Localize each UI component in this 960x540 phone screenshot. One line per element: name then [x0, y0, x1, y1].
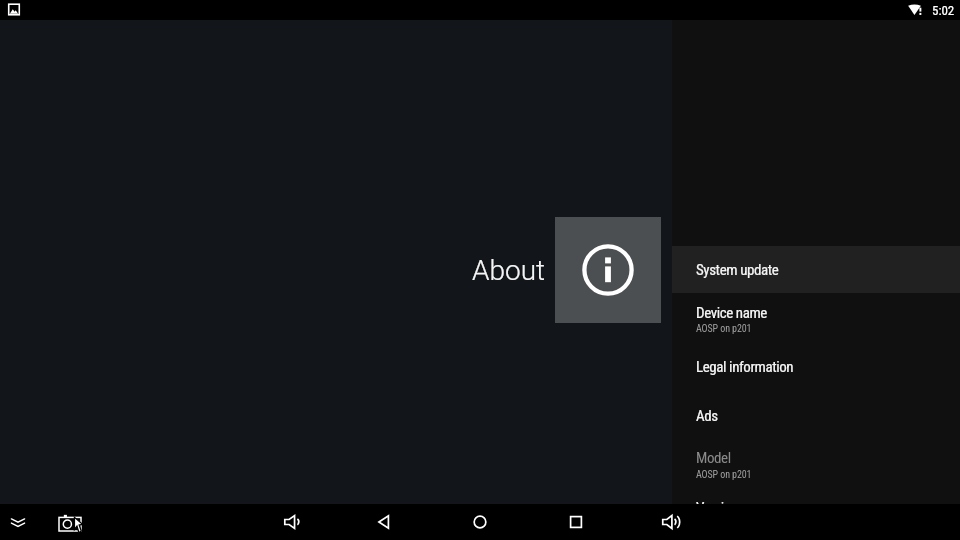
- button[interactable]: Model: [672, 441, 960, 495]
- button[interactable]: Version: [672, 495, 960, 540]
- button[interactable]: Back: [366, 504, 402, 540]
- button[interactable]: Screenshot: [52, 504, 88, 540]
- button[interactable]: Legal information: [672, 347, 960, 394]
- staticText: AOSP on p201: [696, 469, 752, 481]
- button[interactable]: Volume up: [651, 504, 687, 540]
- button[interactable]: Volume down: [274, 504, 310, 540]
- staticText: Ads: [696, 407, 718, 425]
- staticText: Version: [696, 499, 738, 517]
- staticText: Model: [696, 449, 731, 467]
- button[interactable]: Recent apps: [558, 504, 594, 540]
- staticText: AOSP on p201: [696, 323, 752, 335]
- staticText: System update: [696, 261, 779, 279]
- staticText: About: [472, 254, 546, 287]
- staticText: Legal information: [696, 358, 794, 376]
- staticText: 5:02: [932, 3, 955, 18]
- button[interactable]: Ads: [672, 394, 960, 441]
- button[interactable]: About device: [555, 217, 661, 323]
- button[interactable]: Expand notifications: [0, 504, 36, 540]
- button[interactable]: Device name: [672, 293, 960, 347]
- staticText: Device name: [696, 304, 767, 322]
- button[interactable]: Home: [462, 504, 498, 540]
- button[interactable]: System update: [672, 246, 960, 293]
